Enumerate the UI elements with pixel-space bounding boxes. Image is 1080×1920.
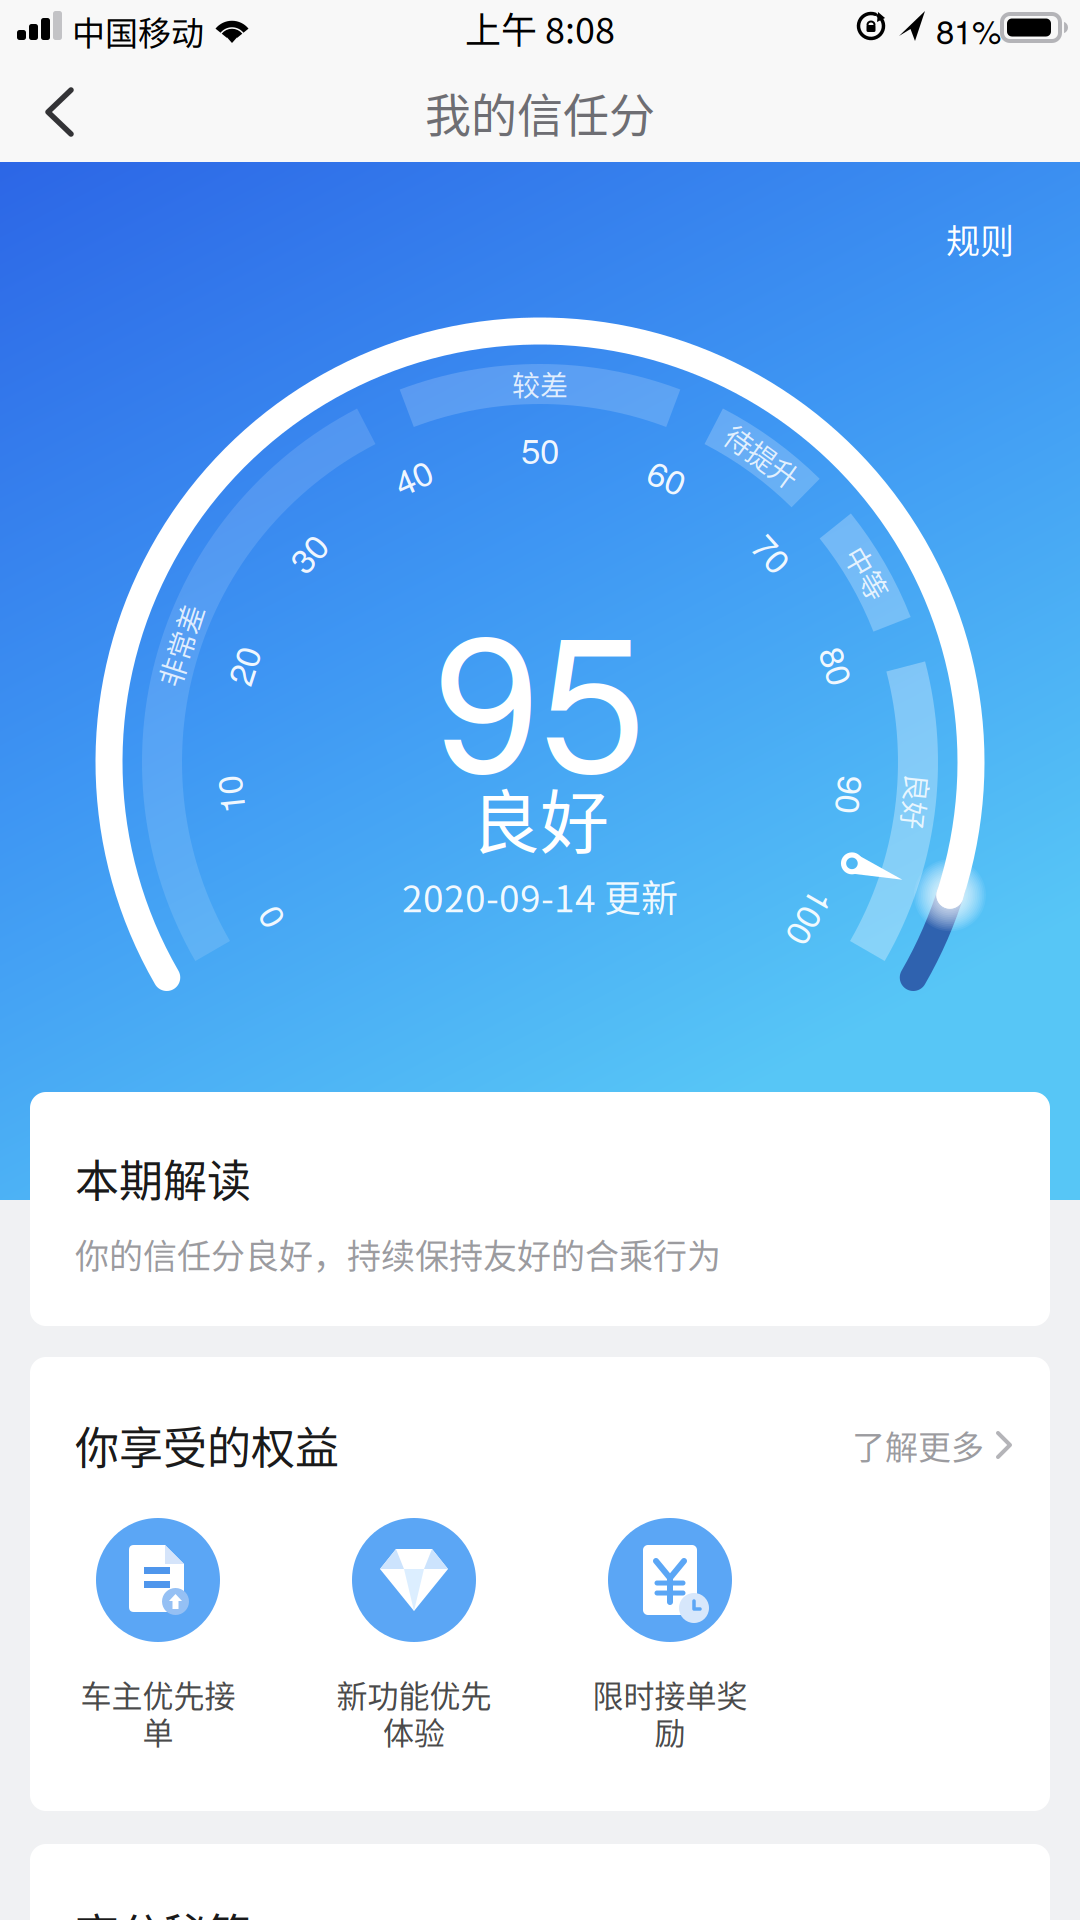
staticText: 70 (754, 527, 792, 578)
staticText: 2020-09-14 更新 (402, 869, 678, 923)
staticText: 较差 (512, 364, 568, 404)
staticText: 10 (210, 770, 248, 820)
staticText: 体验 (383, 1709, 445, 1753)
staticText: 待提升 (720, 436, 804, 476)
staticText: 50 (521, 424, 559, 474)
staticText: 中等 (839, 553, 895, 593)
staticText: 95 (434, 554, 646, 826)
staticText: 了解更多 (852, 1421, 984, 1469)
staticText: 非常差 (138, 625, 222, 665)
staticText: 限时接单奖 (592, 1672, 747, 1716)
staticText: 30 (288, 527, 326, 578)
staticText: 新功能优先 (336, 1672, 491, 1716)
button[interactable]: 限时接单奖 (542, 1518, 798, 1774)
staticText: 100 (783, 893, 840, 943)
staticText: 90 (832, 770, 870, 820)
staticText: 车主优先接 (80, 1672, 235, 1716)
staticText: 中国移动 (72, 7, 204, 55)
button[interactable]: Back (0, 62, 105, 162)
button[interactable]: 新功能优先 (286, 1518, 542, 1774)
staticText: 80 (819, 640, 857, 690)
staticText: 上午 8:08 (465, 2, 615, 54)
staticText: 60 (648, 451, 686, 501)
staticText: 励 (654, 1709, 685, 1753)
staticText: 我的信任分 (425, 79, 655, 145)
button[interactable]: 规则 (914, 198, 1046, 280)
button[interactable]: 了解更多 (838, 1407, 1028, 1483)
staticText: 良好 (471, 768, 609, 868)
staticText: 单 (142, 1709, 173, 1753)
staticText: 0 (259, 893, 278, 943)
staticText: 本期解读 (75, 1146, 251, 1210)
staticText: 规则 (946, 214, 1014, 264)
staticText: 20 (223, 640, 261, 690)
staticText: 你的信任分良好，持续保持友好的合乘行为 (75, 1229, 721, 1279)
staticText: 你享受的权益 (75, 1413, 339, 1477)
staticText: 40 (394, 451, 432, 501)
button[interactable]: 车主优先接 (30, 1518, 286, 1774)
staticText: 良好 (888, 781, 944, 822)
staticText: 81% (936, 6, 1001, 54)
staticText: 高分秘籍 (75, 1900, 251, 1920)
